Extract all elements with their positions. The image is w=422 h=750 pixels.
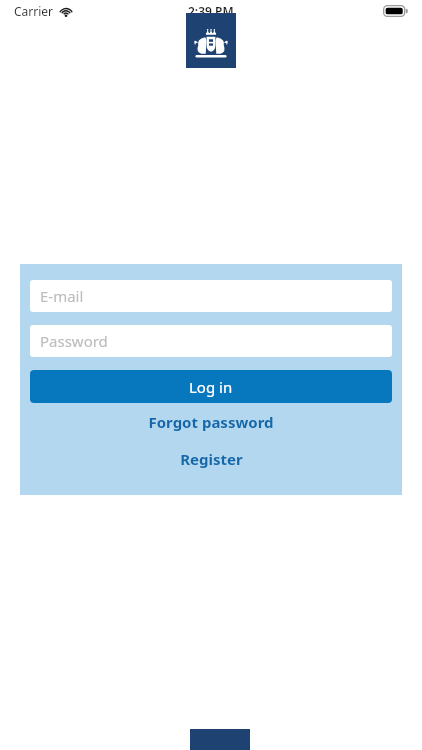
button[interactable]: Register [30,440,392,477]
button[interactable]: E-mail [30,280,392,312]
staticText: 2:39 PM [188,3,234,19]
staticText: Forgot password [148,412,274,432]
staticText: Carrier [14,3,54,19]
staticText: Log in [189,377,233,397]
staticText: Password [40,331,108,351]
button[interactable]: Password [30,325,392,357]
staticText: Register [180,449,243,469]
button[interactable]: Forgot password [30,403,392,440]
button[interactable]: Log in [30,370,392,403]
staticText: E-mail [40,286,84,306]
other: Rijksoverheid logo [186,13,236,68]
